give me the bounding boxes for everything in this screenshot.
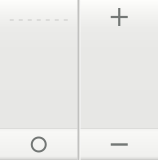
button[interactable]: Scrub <box>0 0 77 128</box>
button[interactable]: Increase <box>80 0 158 128</box>
button[interactable]: Power <box>0 129 77 160</box>
button[interactable]: Decrease <box>80 129 158 160</box>
